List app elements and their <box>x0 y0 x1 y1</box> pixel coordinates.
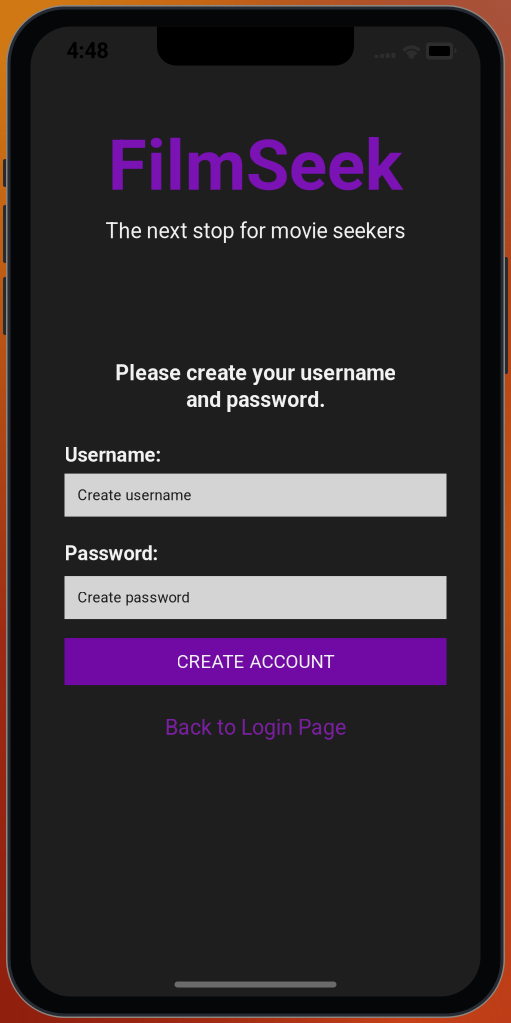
staticText: CREATE ACCOUNT <box>176 651 334 672</box>
staticText: Password: <box>64 542 158 565</box>
button[interactable]: Create username <box>64 474 446 517</box>
staticText: Create password <box>77 589 189 606</box>
button[interactable]: CREATE ACCOUNT <box>64 638 446 685</box>
staticText: 4:48 <box>66 38 108 63</box>
staticText: Back to Login Page <box>165 715 346 740</box>
staticText: Username: <box>64 443 161 467</box>
staticText: FilmSeek <box>108 124 403 207</box>
staticText: Please create your username and password… <box>115 360 396 412</box>
button[interactable]: Create password <box>64 576 446 619</box>
staticText: Create username <box>77 486 191 504</box>
button[interactable]: Back to Login Page <box>155 712 356 743</box>
staticText: The next stop for movie seekers <box>105 218 405 243</box>
